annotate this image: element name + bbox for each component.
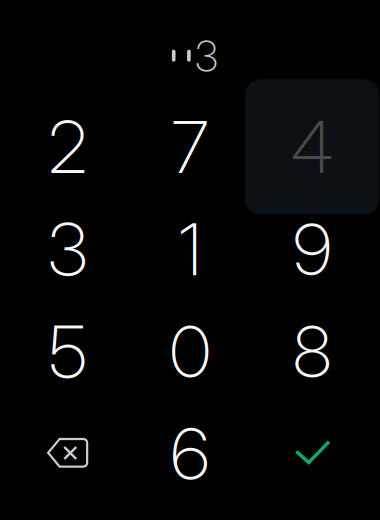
button[interactable]: 3 — [7, 198, 129, 300]
button[interactable]: Delete — [7, 402, 129, 505]
button[interactable]: 0 — [129, 300, 251, 402]
staticText: 4 — [291, 103, 334, 190]
staticText: 2 — [48, 103, 87, 190]
staticText: 3 — [195, 31, 218, 81]
button[interactable]: Confirm passcode — [251, 402, 373, 505]
button[interactable]: 1 — [129, 198, 251, 300]
staticText: 1 — [178, 205, 201, 293]
staticText: 9 — [293, 205, 332, 293]
button[interactable]: 6 — [129, 402, 251, 505]
button[interactable]: 5 — [7, 300, 129, 402]
staticText: 6 — [170, 410, 209, 497]
button[interactable]: 9 — [251, 198, 373, 300]
staticText: 0 — [169, 308, 210, 395]
staticText: 7 — [171, 103, 208, 190]
button[interactable]: 4 — [251, 96, 373, 198]
staticText: 8 — [293, 308, 332, 395]
button[interactable]: 8 — [251, 300, 373, 402]
staticText: 5 — [49, 308, 87, 395]
button[interactable]: 2 — [7, 96, 129, 198]
button[interactable]: 7 — [129, 96, 251, 198]
staticText: 3 — [48, 205, 88, 293]
